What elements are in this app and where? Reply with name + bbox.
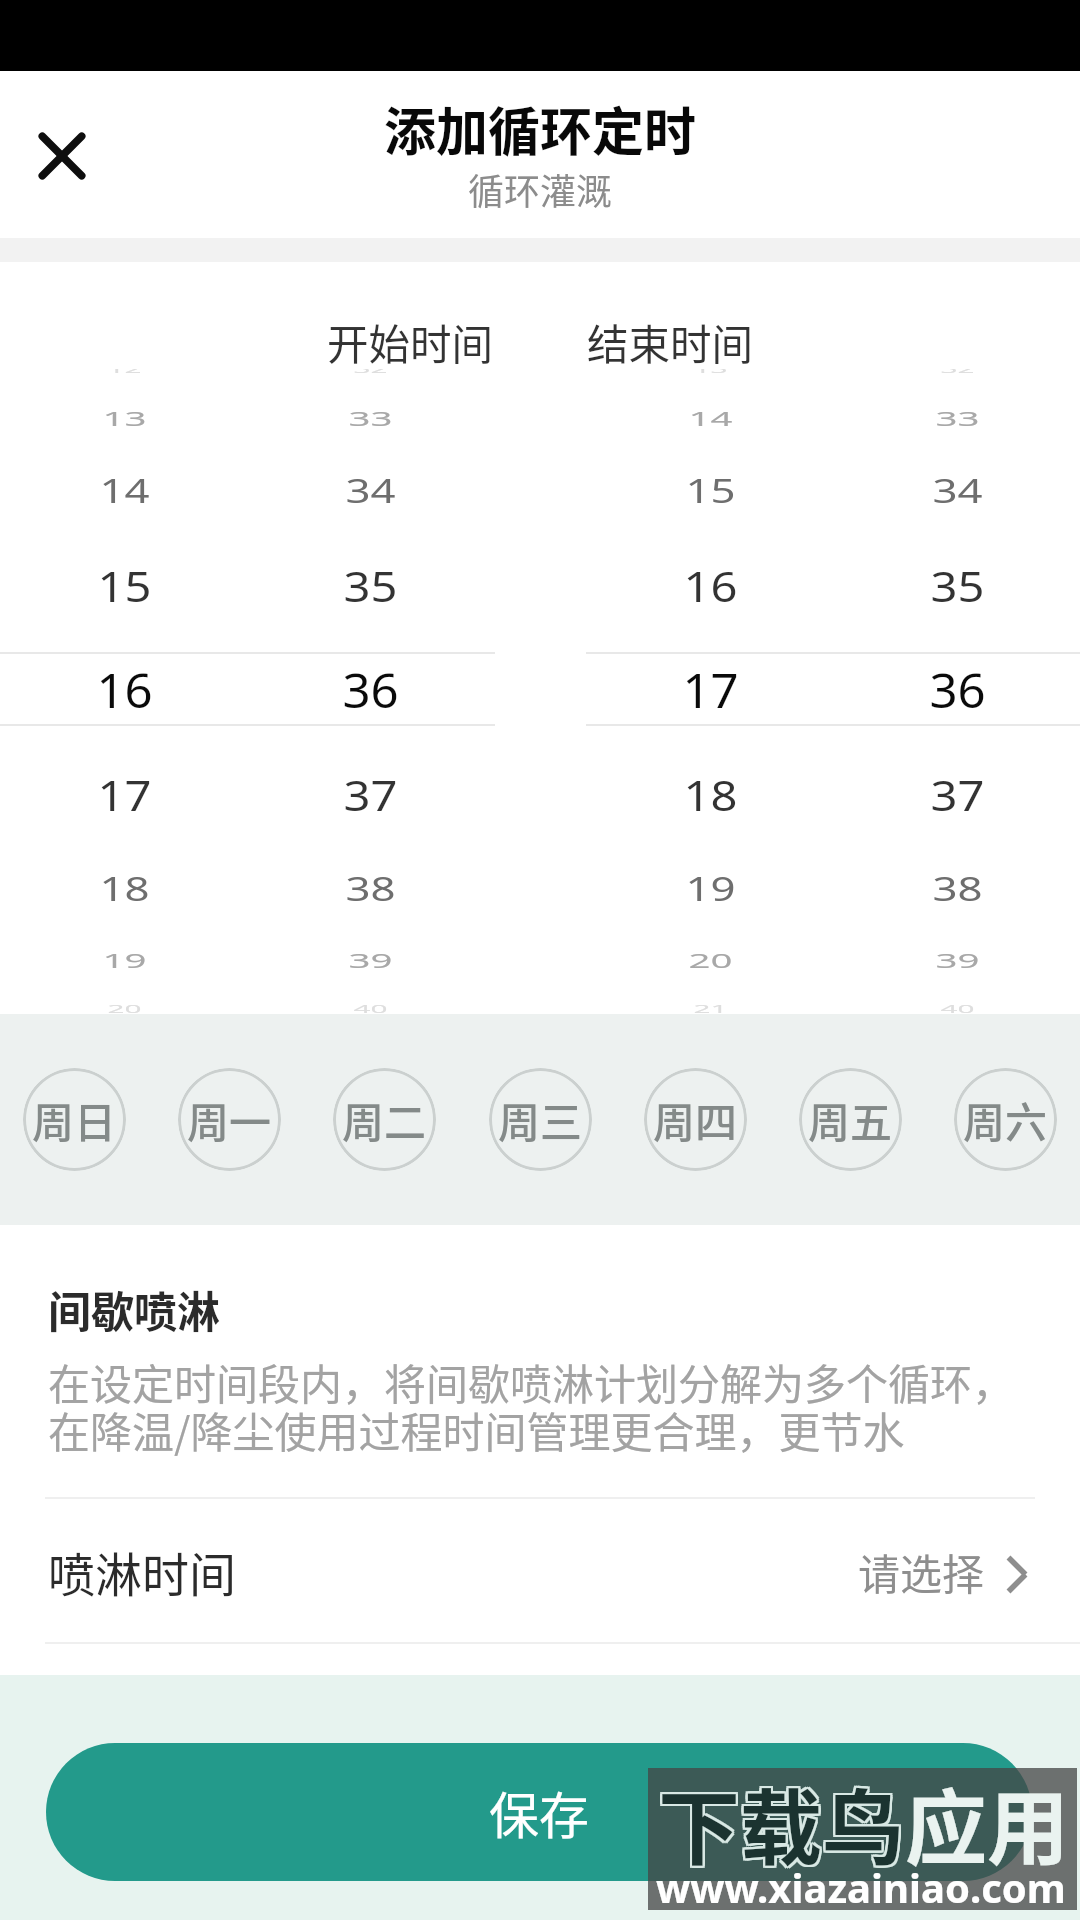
button[interactable]: Start minute xyxy=(247,365,494,1014)
staticText: 32 xyxy=(353,363,388,376)
staticText: 应用 xyxy=(907,1763,1072,1882)
staticText: 40 xyxy=(940,1003,975,1016)
staticText: 32 xyxy=(940,363,975,376)
staticText: 在设定时间段内，将间歇喷淋计划分解为多个循环，在降温/降尘使用过程时间管理更合理… xyxy=(48,1351,1038,1460)
staticText: 添加循环定时 xyxy=(384,91,697,166)
staticText: 34 xyxy=(345,469,396,512)
staticText: 下载鸟 xyxy=(656,1761,903,1880)
button[interactable]: 周三 xyxy=(489,1068,592,1171)
staticText: 请选择 xyxy=(858,1541,985,1602)
staticText: 开始时间 xyxy=(327,312,494,372)
staticText: 21 xyxy=(693,1003,728,1016)
button[interactable]: Close xyxy=(20,113,104,197)
staticText: 应用 xyxy=(903,1761,1068,1880)
staticText: 35 xyxy=(930,557,984,614)
button[interactable]: 周五 xyxy=(799,1068,902,1171)
staticText: 17 xyxy=(97,766,151,823)
staticText: 38 xyxy=(345,867,396,910)
button[interactable]: 周四 xyxy=(644,1068,747,1171)
staticText: 下载鸟 xyxy=(660,1765,907,1884)
staticText: 39 xyxy=(348,947,392,974)
staticText: 应用 xyxy=(903,1765,1068,1884)
staticText: 下载鸟 xyxy=(656,1763,903,1882)
staticText: 18 xyxy=(99,867,150,910)
staticText: 20 xyxy=(107,1003,141,1016)
staticText: 周四 xyxy=(653,1089,738,1150)
staticText: 16 xyxy=(683,557,737,614)
staticText: 周一 xyxy=(187,1089,272,1150)
staticText: 下载鸟 xyxy=(658,1765,905,1884)
staticText: 16 xyxy=(96,657,153,722)
staticText: 下载鸟 xyxy=(658,1763,905,1882)
staticText: 周日 xyxy=(32,1089,117,1150)
staticText: 下载鸟 xyxy=(660,1763,907,1882)
button[interactable]: 喷淋时间 xyxy=(0,1499,1080,1643)
staticText: 37 xyxy=(343,766,397,823)
staticText: 应用 xyxy=(905,1765,1070,1884)
staticText: 14 xyxy=(688,405,732,432)
staticText: 33 xyxy=(348,405,392,432)
staticText: 循环灌溉 xyxy=(468,163,613,215)
button[interactable]: 周一 xyxy=(178,1068,281,1171)
staticText: 34 xyxy=(932,469,983,512)
staticText: 14 xyxy=(99,469,150,512)
staticText: 12 xyxy=(107,363,141,376)
staticText: 20 xyxy=(688,947,732,974)
staticText: 下载鸟 xyxy=(656,1765,903,1884)
staticText: 结束时间 xyxy=(587,312,754,372)
staticText: 下载鸟 xyxy=(660,1761,907,1880)
staticText: 17 xyxy=(682,657,739,722)
staticText: 36 xyxy=(929,657,986,722)
staticText: www.xiazainiao.com xyxy=(656,1860,1066,1914)
button[interactable]: End minute xyxy=(833,365,1080,1014)
staticText: 应用 xyxy=(907,1765,1072,1884)
button[interactable]: 保存 xyxy=(46,1743,1032,1881)
staticText: 应用 xyxy=(905,1761,1070,1880)
staticText: 18 xyxy=(683,766,737,823)
staticText: 应用 xyxy=(907,1761,1072,1880)
staticText: 19 xyxy=(685,867,736,910)
staticText: 15 xyxy=(97,557,151,614)
staticText: 周三 xyxy=(498,1089,583,1150)
staticText: 33 xyxy=(935,405,979,432)
staticText: 19 xyxy=(102,947,146,974)
staticText: 保存 xyxy=(489,1776,589,1848)
staticText: 40 xyxy=(353,1003,388,1016)
button[interactable]: End hour xyxy=(586,365,833,1014)
staticText: 13 xyxy=(102,405,146,432)
staticText: 周六 xyxy=(963,1089,1048,1150)
staticText: 下载鸟 xyxy=(658,1761,905,1880)
staticText: 间歇喷淋 xyxy=(48,1278,220,1340)
button[interactable]: Start hour xyxy=(0,365,247,1014)
staticText: 39 xyxy=(935,947,979,974)
staticText: 15 xyxy=(685,469,736,512)
button[interactable]: 周二 xyxy=(333,1068,436,1171)
button[interactable]: 周六 xyxy=(954,1068,1057,1171)
button[interactable]: 周日 xyxy=(23,1068,126,1171)
staticText: 37 xyxy=(930,766,984,823)
staticText: 36 xyxy=(342,657,399,722)
staticText: 13 xyxy=(693,363,728,376)
staticText: 喷淋时间 xyxy=(48,1537,236,1605)
staticText: 周二 xyxy=(342,1089,427,1150)
staticText: 周五 xyxy=(808,1089,893,1150)
staticText: 应用 xyxy=(905,1763,1070,1882)
staticText: 38 xyxy=(932,867,983,910)
staticText: 应用 xyxy=(903,1763,1068,1882)
staticText: 35 xyxy=(343,557,397,614)
